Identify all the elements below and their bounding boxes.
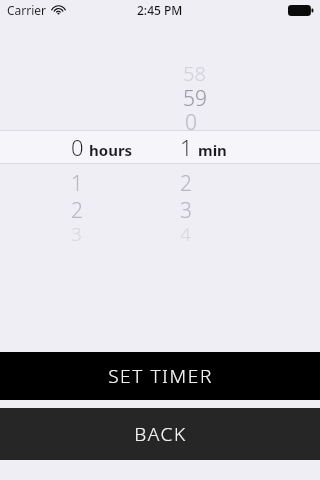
staticText: 2 bbox=[180, 169, 192, 198]
staticText: Carrier bbox=[7, 2, 47, 18]
staticText: 3 bbox=[71, 221, 82, 247]
staticText: 1 bbox=[71, 169, 83, 198]
staticText: SET TIMER bbox=[108, 363, 213, 389]
staticText: BACK bbox=[134, 421, 187, 447]
staticText: hours bbox=[89, 140, 133, 160]
button[interactable]: BACK bbox=[0, 408, 320, 460]
staticText: 2 bbox=[71, 196, 83, 225]
staticText: 0 bbox=[185, 108, 197, 137]
staticText: 0 bbox=[71, 132, 84, 162]
staticText: 58 bbox=[183, 60, 206, 87]
staticText: 59 bbox=[183, 84, 207, 113]
staticText: 4 bbox=[180, 221, 191, 247]
staticText: min bbox=[198, 140, 227, 160]
button[interactable]: SET TIMER bbox=[0, 352, 320, 400]
staticText: 1 bbox=[180, 132, 193, 162]
button[interactable]: 0 bbox=[0, 130, 320, 164]
staticText: 3 bbox=[180, 196, 192, 225]
staticText: 2:45 PM bbox=[137, 2, 183, 18]
